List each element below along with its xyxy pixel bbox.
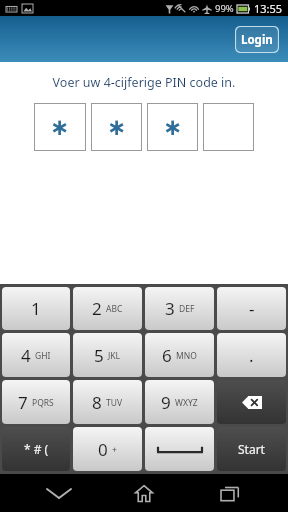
staticText: ∗	[107, 114, 127, 141]
button[interactable]: 4	[2, 333, 70, 377]
staticText: 6	[162, 344, 172, 367]
staticText: MNO	[176, 350, 197, 362]
staticText: 8	[92, 391, 102, 414]
button[interactable]: Start	[217, 427, 286, 471]
staticText: 3	[165, 297, 175, 320]
staticText: ∗	[163, 114, 183, 141]
staticText: +	[112, 444, 117, 456]
button[interactable]: Backspace	[217, 380, 286, 424]
button[interactable]: ∗	[91, 103, 142, 151]
staticText: ABC	[106, 303, 123, 315]
button[interactable]: 1	[2, 287, 70, 330]
button[interactable]: Hide keyboard	[32, 476, 86, 510]
staticText: Voer uw 4-cijferige PIN code in.	[0, 74, 288, 91]
staticText: DEF	[179, 303, 195, 315]
staticText: Login	[241, 32, 273, 48]
button[interactable]: ∗	[34, 103, 86, 151]
staticText: 9	[161, 391, 171, 414]
button[interactable]: 3	[145, 287, 214, 330]
staticText: 0	[98, 438, 108, 461]
staticText: GHI	[35, 350, 51, 362]
staticText: 5	[94, 344, 104, 367]
staticText: 7	[18, 391, 28, 414]
button[interactable]: 8	[73, 380, 142, 424]
staticText: ∗	[50, 114, 70, 141]
button[interactable]: 0	[73, 427, 142, 471]
button[interactable]: Home	[117, 476, 171, 510]
button[interactable]: Recent apps	[203, 476, 257, 510]
button[interactable]: * # (	[2, 427, 70, 471]
staticText: 2	[92, 297, 102, 320]
staticText: 1	[31, 297, 41, 320]
staticText: WXYZ	[175, 397, 198, 409]
button[interactable]: 5	[73, 333, 142, 377]
button[interactable]: 2	[73, 287, 142, 330]
button[interactable]: 9	[145, 380, 214, 424]
button[interactable]: 7	[2, 380, 70, 424]
staticText: 4	[21, 344, 31, 367]
button[interactable]: .	[217, 333, 286, 377]
button[interactable]: -	[217, 287, 286, 330]
staticText: 13:55	[254, 1, 283, 16]
staticText: .	[249, 344, 254, 367]
button[interactable]: Space	[145, 427, 214, 471]
staticText: TUV	[106, 397, 123, 409]
staticText: * # (	[24, 441, 49, 457]
staticText: PQRS	[32, 397, 54, 409]
button[interactable]: 6	[145, 333, 214, 377]
staticText: JKL	[108, 350, 121, 362]
staticText: Start	[238, 441, 265, 457]
button[interactable]: Login	[235, 26, 279, 53]
staticText: 99%	[215, 2, 234, 15]
button[interactable]	[203, 103, 254, 151]
staticText: -	[249, 297, 255, 320]
button[interactable]: ∗	[147, 103, 198, 151]
